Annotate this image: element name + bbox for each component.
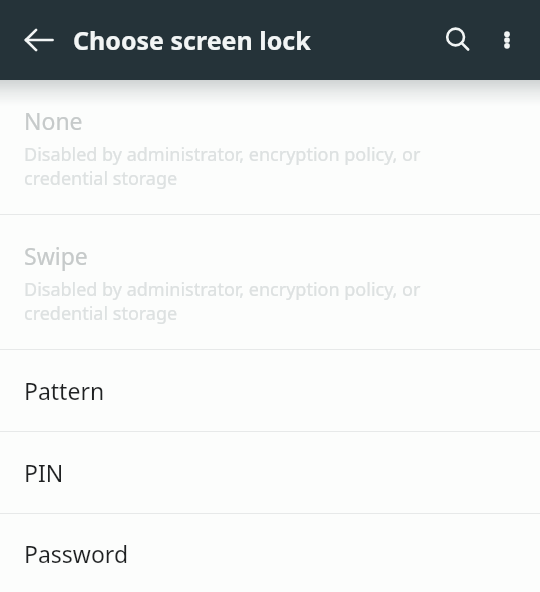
staticText: Password	[24, 538, 129, 569]
staticText: Disabled by administrator, encryption po…	[24, 142, 421, 190]
staticText: Pattern	[24, 375, 105, 406]
button[interactable]: More options	[484, 17, 530, 63]
staticText: Choose screen lock	[73, 23, 311, 57]
button[interactable]: Swipe	[0, 215, 540, 349]
button[interactable]: Password	[0, 514, 540, 592]
staticText: None	[24, 105, 83, 136]
staticText: Swipe	[24, 240, 88, 271]
staticText: PIN	[24, 457, 64, 488]
button[interactable]: Search	[432, 14, 484, 66]
button[interactable]: Back	[11, 12, 67, 68]
button[interactable]: Pattern	[0, 350, 540, 431]
button[interactable]: PIN	[0, 432, 540, 513]
button[interactable]: None	[0, 80, 540, 214]
staticText: Disabled by administrator, encryption po…	[24, 277, 421, 325]
